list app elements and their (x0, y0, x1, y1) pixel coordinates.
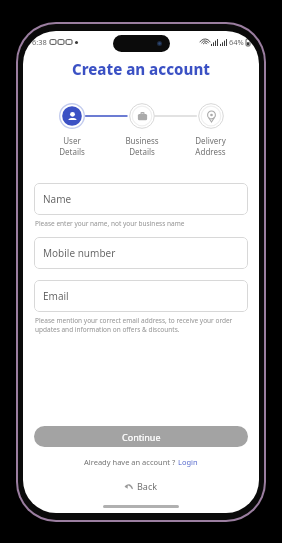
staticText: Mobile number (43, 246, 116, 260)
other: Back (124, 482, 133, 491)
staticText: Login (178, 457, 198, 467)
button[interactable]: Back (120, 478, 162, 494)
staticText: User (63, 135, 81, 146)
button[interactable]: User Details step (37, 103, 107, 157)
button[interactable]: Mobile number (34, 237, 248, 269)
staticText: Please mention your correct email addres… (35, 316, 248, 334)
button[interactable]: Continue (34, 426, 248, 447)
staticText: Name (43, 192, 72, 206)
button[interactable]: Business Details step (107, 103, 176, 157)
staticText: 6:38 (32, 37, 47, 47)
staticText: Details (59, 146, 85, 157)
staticText: Email (43, 289, 69, 303)
button[interactable]: Delivery Address step (176, 103, 245, 157)
staticText: Continue (122, 431, 161, 443)
staticText: Please enter your name, not your busines… (35, 219, 248, 228)
button[interactable]: Login (178, 457, 198, 467)
button[interactable]: Name (34, 183, 248, 215)
staticText: Details (129, 146, 155, 157)
staticText: Back (137, 480, 158, 492)
button[interactable]: Email (34, 280, 248, 312)
staticText: 64% (229, 37, 244, 47)
staticText: Delivery (195, 135, 226, 146)
staticText: Already have an account ? (84, 457, 178, 467)
staticText: Address (195, 146, 226, 157)
staticText: Business (125, 135, 159, 146)
staticText: Create an account (23, 59, 259, 79)
